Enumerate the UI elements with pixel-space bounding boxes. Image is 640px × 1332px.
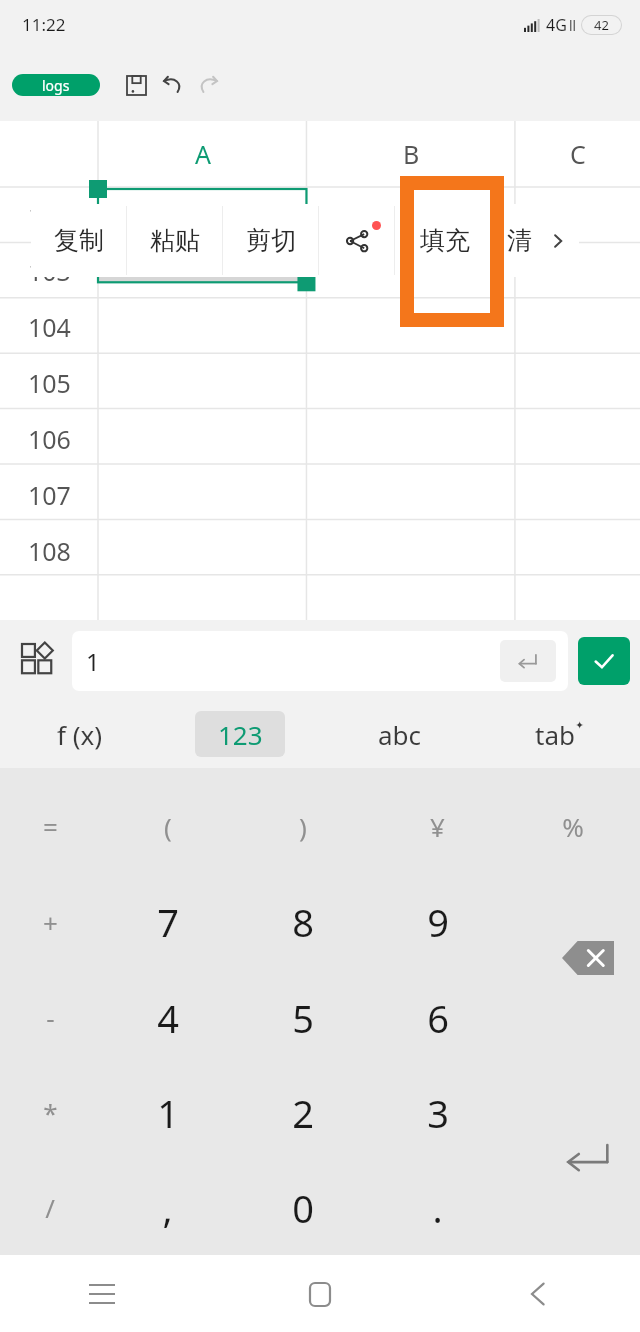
button[interactable]: % — [505, 778, 640, 874]
staticText: 9 — [427, 896, 449, 948]
staticText: . — [432, 1182, 443, 1234]
button[interactable]: + — [0, 874, 100, 970]
button[interactable]: 4 — [100, 970, 235, 1065]
staticText: f (x) — [57, 717, 103, 752]
staticText: % — [562, 809, 584, 844]
button[interactable]: Recents — [70, 1262, 134, 1326]
button[interactable]: f (x) — [0, 704, 160, 764]
staticText: 2 — [286, 198, 301, 233]
staticText: , — [162, 1182, 173, 1234]
staticText: 42 — [594, 16, 609, 34]
staticText: ¥ — [430, 809, 445, 844]
staticText: 2 — [292, 1087, 314, 1139]
staticText: 106 — [28, 422, 71, 456]
staticText: A — [195, 137, 211, 171]
staticText: C — [570, 137, 586, 171]
staticText: ✦ — [575, 719, 585, 732]
button[interactable]: 0 — [235, 1160, 370, 1255]
button[interactable]: 123 — [160, 704, 320, 764]
button[interactable]: * — [0, 1065, 100, 1160]
button[interactable]: / — [0, 1160, 100, 1255]
button[interactable]: 7 — [100, 874, 235, 970]
staticText: 108 — [28, 534, 71, 568]
staticText: 102 — [28, 198, 71, 232]
button[interactable]: 剪切 — [223, 204, 318, 277]
staticText: 清 — [507, 225, 532, 256]
staticText: 1 — [157, 1087, 179, 1139]
button[interactable]: 1 — [72, 631, 568, 691]
button[interactable]: ¥ — [370, 778, 505, 874]
button[interactable]: Undo — [152, 65, 192, 105]
staticText: 0 — [292, 1182, 314, 1234]
staticText: 填充 — [420, 225, 470, 256]
staticText: logs — [42, 76, 70, 95]
button[interactable] — [505, 1160, 640, 1255]
staticText: = — [43, 809, 58, 844]
button[interactable]: Redo — [188, 65, 228, 105]
staticText: 107 — [28, 478, 71, 512]
button[interactable]: Back — [506, 1262, 570, 1326]
staticText: ) — [299, 809, 307, 844]
button[interactable]: 3 — [370, 1065, 505, 1160]
button[interactable]: Enter — [558, 1136, 618, 1180]
staticText: 11:22 — [22, 13, 66, 36]
staticText: B — [403, 137, 420, 171]
button[interactable]: tab — [480, 704, 640, 764]
staticText: 103 — [28, 254, 71, 288]
button[interactable]: More — [542, 204, 574, 277]
button[interactable]: Home — [288, 1262, 352, 1326]
staticText: 5 — [292, 992, 314, 1044]
staticText: 复制 — [54, 225, 104, 256]
button[interactable] — [505, 1065, 640, 1160]
staticText: 105 — [28, 366, 71, 400]
button[interactable]: ( — [100, 778, 235, 874]
staticText: + — [43, 905, 58, 940]
staticText: 粘贴 — [150, 225, 200, 256]
staticText: 6 — [427, 992, 449, 1044]
staticText: 剪切 — [246, 225, 296, 256]
button[interactable]: 复制 — [31, 204, 126, 277]
staticText: tab — [535, 717, 575, 752]
staticText: 7 — [157, 896, 179, 948]
staticText: 4 — [157, 992, 179, 1044]
button[interactable]: ) — [235, 778, 370, 874]
button[interactable]: Cell functions — [16, 638, 62, 684]
button[interactable]: 2 — [235, 1065, 370, 1160]
button[interactable] — [505, 970, 640, 1065]
button[interactable]: Backspace — [558, 936, 618, 980]
button[interactable]: . — [370, 1160, 505, 1255]
staticText: 8 — [292, 896, 314, 948]
button[interactable]: = — [0, 778, 100, 874]
button[interactable]: - — [0, 970, 100, 1065]
button[interactable]: , — [100, 1160, 235, 1255]
button[interactable]: 9 — [370, 874, 505, 970]
staticText: 104 — [28, 310, 71, 344]
staticText: 123 — [218, 717, 263, 752]
button[interactable]: logs — [12, 74, 100, 96]
button[interactable]: 8 — [235, 874, 370, 970]
staticText: 4G — [546, 14, 567, 36]
staticText: abc — [378, 717, 422, 752]
staticText: * — [43, 1095, 58, 1130]
staticText: - — [46, 1000, 55, 1035]
button[interactable]: Share — [319, 204, 394, 277]
staticText: 1 — [86, 645, 100, 678]
button[interactable]: Save — [116, 65, 156, 105]
button[interactable]: 1 — [100, 1065, 235, 1160]
button[interactable]: 6 — [370, 970, 505, 1065]
button[interactable] — [505, 874, 640, 970]
staticText: / — [45, 1190, 55, 1225]
button[interactable]: 填充 — [395, 204, 495, 277]
button[interactable]: abc — [320, 704, 480, 764]
button[interactable]: 清 — [496, 204, 542, 277]
staticText: 3 — [427, 1087, 449, 1139]
button[interactable]: 5 — [235, 970, 370, 1065]
button[interactable]: Confirm — [578, 637, 630, 685]
staticText: ( — [164, 809, 172, 844]
button[interactable]: 粘贴 — [127, 204, 222, 277]
